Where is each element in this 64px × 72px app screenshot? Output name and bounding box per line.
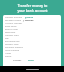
staticText: Payment method: [5, 46, 23, 49]
button[interactable]: Status: [3, 55, 61, 58]
button[interactable]: Payment method: [3, 46, 61, 49]
staticText: Total charged: [5, 49, 19, 52]
staticText: SEND: [28, 59, 34, 62]
staticText: Bank name: [5, 25, 17, 28]
button[interactable]: Fee: [3, 37, 61, 40]
button[interactable]: Account number: [3, 22, 61, 25]
button[interactable]: Total charged: [3, 49, 61, 52]
staticText: Recipient name: [5, 19, 21, 22]
staticText: Exchange rate: [5, 40, 20, 43]
staticText: $250.00: [25, 16, 34, 19]
staticText: Delivery time: [5, 43, 19, 46]
button[interactable]: Recipient name: [3, 19, 61, 22]
staticText: Reference: [5, 31, 16, 34]
button[interactable]: Transfer amount: [3, 16, 61, 19]
staticText: Status: [5, 55, 12, 58]
button[interactable]: Notes: [3, 52, 61, 55]
button[interactable]: Branch code: [3, 28, 61, 31]
staticText: Transfer date: [5, 34, 19, 37]
button[interactable]: SEND: [27, 58, 35, 63]
staticText: Account number: [5, 22, 23, 25]
staticText: Transfer money to your bank account: [17, 3, 48, 13]
staticText: Notes: [5, 52, 12, 55]
button[interactable]: Reference: [3, 31, 61, 34]
staticText: Branch code: [5, 28, 18, 31]
staticText: J. Morgan: [23, 19, 34, 22]
staticText: CANCEL: [13, 59, 22, 62]
staticText: Transfer amount: [5, 16, 23, 19]
button[interactable]: Exchange rate: [3, 40, 61, 43]
button[interactable]: Delivery time: [3, 43, 61, 46]
button[interactable]: Transfer date: [3, 34, 61, 37]
button[interactable]: Bank name: [3, 25, 61, 28]
button[interactable]: CANCEL: [12, 58, 23, 63]
staticText: Fee: [5, 37, 9, 40]
